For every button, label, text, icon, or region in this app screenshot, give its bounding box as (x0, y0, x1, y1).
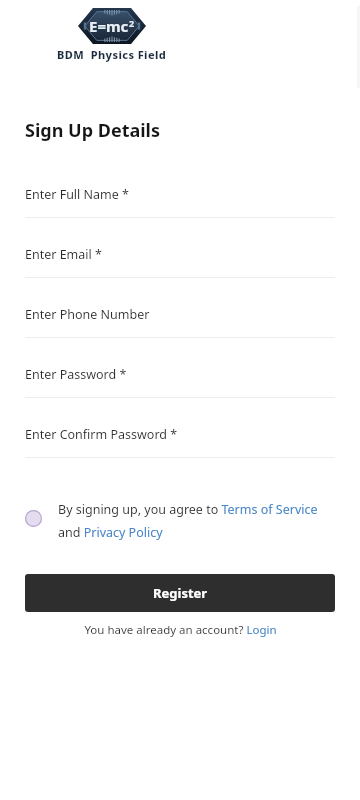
staticText: 2 (129, 17, 135, 29)
button[interactable]: Enter Full Name * (0, 186, 360, 246)
button[interactable]: Enter Email * (0, 246, 360, 306)
staticText: Enter Password * (25, 366, 127, 383)
button[interactable]: Agree to terms checkbox (25, 510, 42, 527)
button[interactable]: You have already an account? Login (0, 622, 360, 638)
button[interactable]: Register (25, 574, 335, 612)
staticText: E=mc (89, 16, 129, 36)
button[interactable]: Enter Phone Number (0, 306, 360, 366)
staticText: Enter Confirm Password * (25, 426, 178, 443)
staticText: Enter Full Name * (25, 186, 129, 203)
button[interactable]: Enter Confirm Password * (0, 426, 360, 486)
staticText: Sign Up Details (25, 118, 161, 143)
staticText: Register (153, 584, 208, 602)
staticText: You have already an account? Login (84, 622, 277, 638)
staticText: BDM Physics Field (57, 47, 167, 62)
button[interactable]: Enter Password * (0, 366, 360, 426)
staticText: By signing up, you agree to Terms of Ser… (58, 501, 340, 541)
staticText: Enter Email * (25, 246, 102, 263)
staticText: Enter Phone Number (25, 306, 150, 323)
button[interactable]: Agree to terms checkbox (0, 499, 360, 543)
